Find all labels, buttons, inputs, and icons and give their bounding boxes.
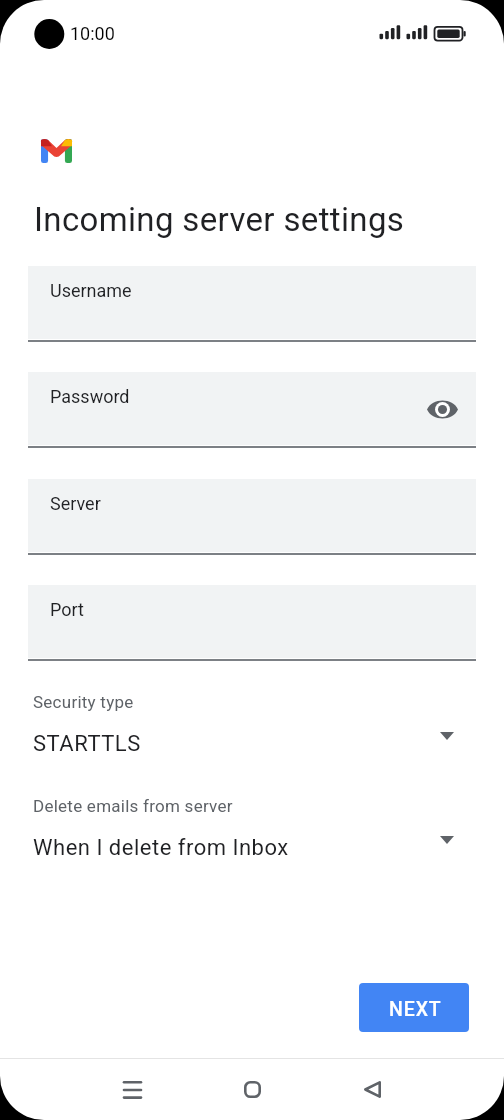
staticText: Password — [50, 386, 130, 407]
staticText: Server — [50, 493, 101, 514]
staticText: Port — [50, 599, 84, 620]
staticText: Username — [50, 280, 132, 301]
button[interactable]: Home — [224, 1059, 280, 1119]
button[interactable]: Security type — [33, 692, 461, 757]
button[interactable]: Username — [28, 266, 476, 342]
button[interactable]: Port — [28, 585, 476, 661]
button[interactable]: Recent apps — [104, 1059, 160, 1119]
button[interactable]: Server — [28, 479, 476, 555]
staticText: 10:00 — [70, 23, 115, 44]
staticText: When I delete from Inbox — [33, 835, 447, 861]
button[interactable]: Password — [28, 372, 476, 448]
staticText: Security type — [33, 692, 134, 712]
button[interactable]: Back — [344, 1059, 400, 1119]
staticText: STARTTLS — [33, 731, 447, 757]
button[interactable]: Delete emails from server — [33, 796, 461, 861]
button[interactable]: NEXT — [359, 983, 469, 1032]
staticText: Delete emails from server — [33, 796, 233, 816]
button[interactable]: Show password — [420, 387, 464, 431]
staticText: Incoming server settings — [34, 200, 405, 239]
staticText: NEXT — [389, 998, 442, 1021]
